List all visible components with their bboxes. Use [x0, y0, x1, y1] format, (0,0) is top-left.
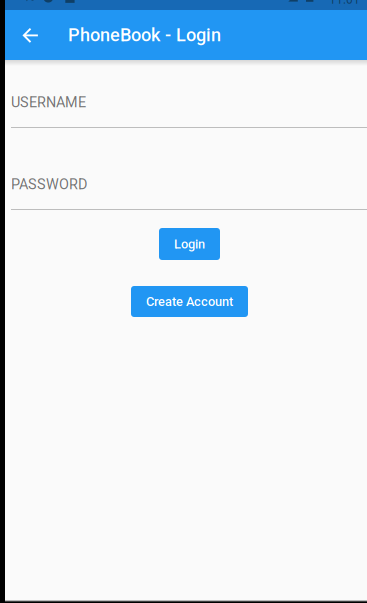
button[interactable]: Create Account: [131, 286, 248, 317]
staticText: Create Account: [146, 294, 233, 309]
staticText: PhoneBook - Login: [68, 24, 221, 46]
button[interactable]: Back: [11, 10, 49, 60]
staticText: 11:01: [329, 0, 360, 7]
staticText: PASSWORD: [11, 176, 87, 193]
staticText: Login: [174, 236, 205, 251]
staticText: USERNAME: [11, 94, 86, 111]
button[interactable]: Login: [159, 228, 220, 260]
